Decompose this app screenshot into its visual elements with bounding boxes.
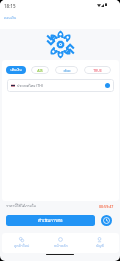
staticText: เติมเงิน bbox=[10, 67, 22, 73]
staticText: ราคานี้ใช้ได้ภายใน bbox=[6, 203, 36, 209]
staticText: บัญชี bbox=[96, 243, 104, 249]
button[interactable]: หน้าหลัก bbox=[41, 233, 80, 253]
staticText: หน้าหลัก bbox=[54, 243, 68, 249]
staticText: ประเทศไทย (TH) bbox=[17, 83, 44, 89]
button[interactable]: ถอนเงิน bbox=[4, 15, 17, 21]
button[interactable]: TRUE bbox=[84, 66, 111, 74]
staticText: ลูกค้าใหม่ bbox=[14, 243, 30, 249]
button[interactable]: ประเทศไทย (TH) bbox=[7, 79, 114, 92]
button[interactable]: AIS bbox=[31, 66, 49, 74]
button[interactable]: บัญชี bbox=[80, 233, 119, 253]
button[interactable]: ลูกค้าใหม่ bbox=[2, 233, 41, 253]
button[interactable]: ดำเนินการต่อ bbox=[6, 215, 95, 226]
staticText: 00:59:47 bbox=[99, 204, 114, 209]
button[interactable]: เติมเงิน bbox=[6, 66, 26, 74]
staticText: AIS bbox=[37, 68, 43, 73]
staticText: TRUE bbox=[93, 68, 102, 73]
button[interactable]: dtac bbox=[55, 66, 78, 74]
staticText: dtac bbox=[63, 68, 71, 73]
other: Info bbox=[105, 83, 110, 88]
button[interactable]: History bbox=[101, 215, 112, 226]
staticText: ดำเนินการต่อ bbox=[38, 217, 63, 224]
staticText: 18:15 bbox=[4, 3, 16, 9]
